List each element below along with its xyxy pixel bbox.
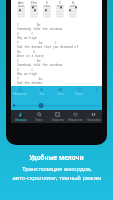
staticText: Were in a hurry <box>17 54 45 58</box>
staticText: Dm G <box>17 50 36 54</box>
staticText: And the dreams <box>17 81 43 85</box>
staticText: And the dreams that you dreamed of <box>17 45 79 49</box>
staticText: Удобные мелочи <box>29 153 84 161</box>
button[interactable]: Текст <box>52 87 68 97</box>
button[interactable]: C <box>56 0 64 18</box>
staticText: G C <box>17 68 34 72</box>
button[interactable] <box>88 87 104 97</box>
staticText: C <box>59 0 62 5</box>
button[interactable]: E <box>43 0 51 18</box>
button[interactable]: Dm <box>30 0 38 18</box>
staticText: F Am <box>17 77 43 81</box>
staticText: F Am C <box>17 41 57 45</box>
staticText: Dm <box>31 0 37 5</box>
staticText: Тон <box>39 92 44 96</box>
staticText: Поиск <box>35 118 43 122</box>
staticText: Настройки <box>86 118 101 122</box>
button[interactable]: Аккорды <box>11 110 30 123</box>
staticText: Somebody told the rainbow <box>17 63 63 67</box>
staticText: Избранное <box>68 118 83 122</box>
staticText: Текст <box>57 92 64 96</box>
button[interactable]: Избранное <box>66 110 84 123</box>
staticText: Метроном <box>13 92 27 96</box>
button[interactable]: Сборники <box>48 110 66 123</box>
staticText: G C <box>17 32 34 36</box>
staticText: C Dm <box>17 23 41 27</box>
staticText: E <box>46 0 48 5</box>
button[interactable]: G <box>69 0 77 18</box>
staticText: Why we high <box>17 36 37 40</box>
staticText: Сброс <box>75 92 83 96</box>
staticText: G <box>72 0 75 5</box>
staticText: Сборники <box>51 118 64 122</box>
staticText: Аккорды <box>15 118 27 122</box>
staticText: Am <box>18 0 24 5</box>
button[interactable]: Тон <box>33 87 49 97</box>
button[interactable]: Метроном <box>12 87 28 97</box>
staticText: Транспозиция аккордов, авто-скроллинг, т… <box>12 165 102 181</box>
button[interactable]: Am <box>17 0 25 18</box>
staticText: Why we high <box>17 72 37 76</box>
button[interactable]: Настройки <box>84 110 102 123</box>
button[interactable]: Поиск <box>30 110 48 123</box>
staticText: C Dm <box>17 59 41 63</box>
button[interactable]: Сброс <box>71 87 87 97</box>
staticText: Somebody told the rainbow <box>17 27 63 31</box>
